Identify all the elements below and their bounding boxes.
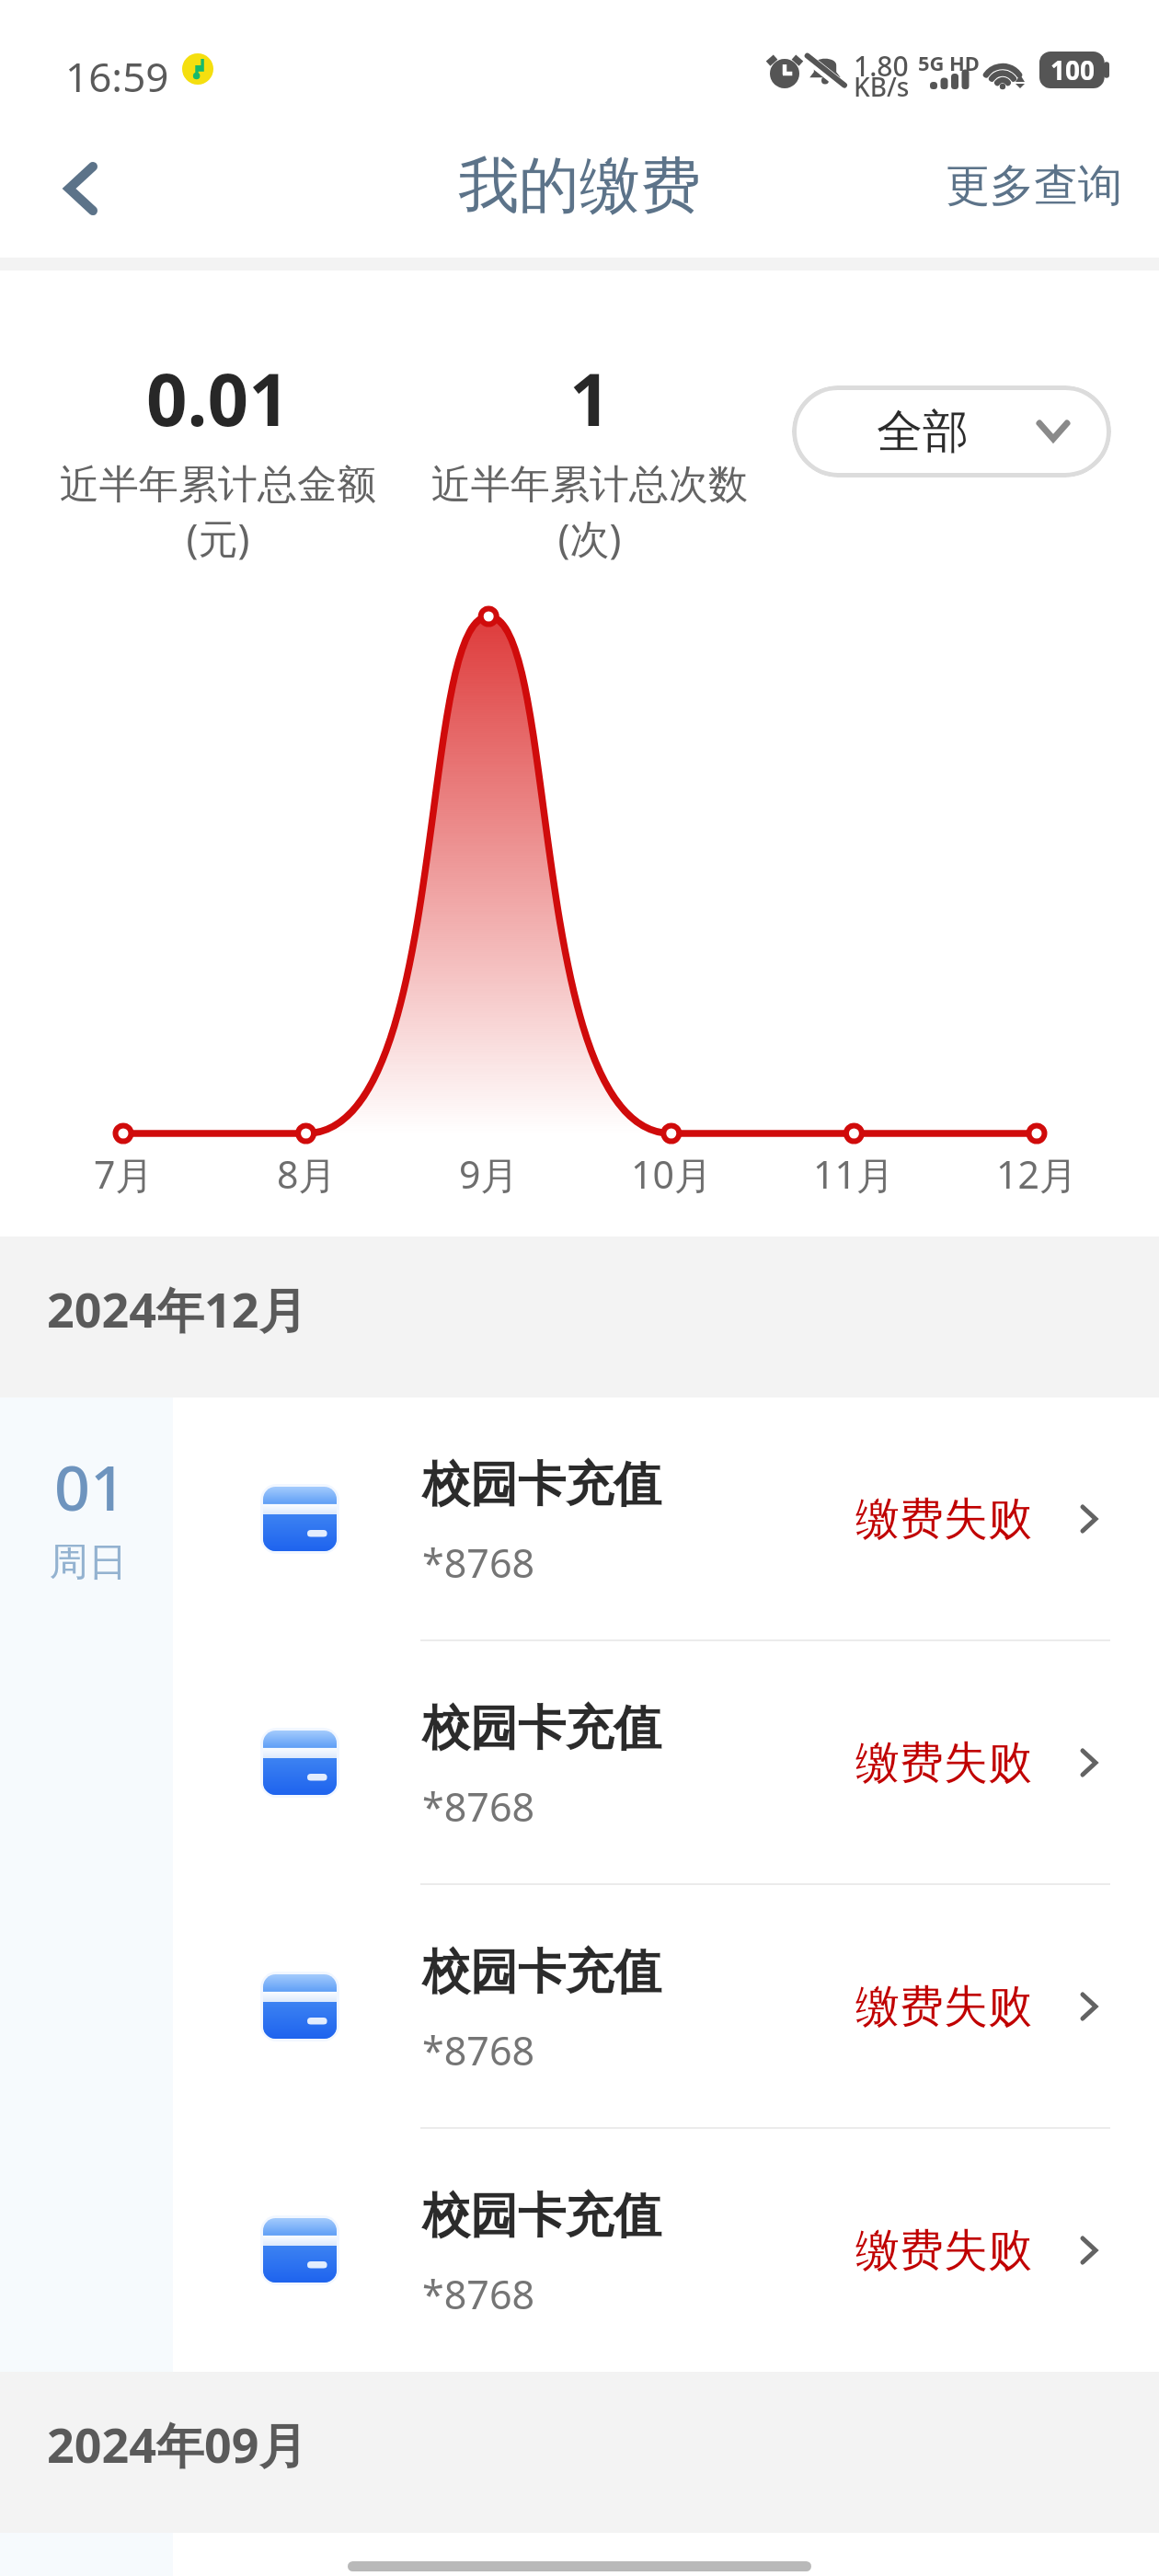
staticText: 0.01 xyxy=(146,350,290,447)
button[interactable]: 校园卡充值 xyxy=(173,1885,1159,2127)
staticText: *8768 xyxy=(422,1779,535,1834)
staticText: 9月 xyxy=(459,1148,519,1200)
staticText: KB/s xyxy=(854,69,910,104)
staticText: 校园卡充值 xyxy=(422,1455,661,1515)
staticText: 11月 xyxy=(813,1148,894,1200)
staticText: *8768 xyxy=(422,1535,535,1590)
staticText: 16:59 xyxy=(65,49,169,104)
staticText: 缴费失败 xyxy=(855,1979,1032,2034)
staticText: 7月 xyxy=(94,1148,154,1200)
staticText: *8768 xyxy=(422,2023,535,2077)
button[interactable]: 全部 xyxy=(792,385,1111,477)
staticText: 缴费失败 xyxy=(855,2223,1032,2278)
staticText: 1.80 xyxy=(854,47,909,85)
button[interactable]: 更多查询 xyxy=(909,134,1159,237)
staticText: 100 xyxy=(1050,52,1096,87)
staticText: 全部 xyxy=(877,403,969,461)
staticText: 缴费失败 xyxy=(855,1735,1032,1790)
staticText: 2024年12月 xyxy=(47,1276,307,1341)
button[interactable]: 校园卡充值 xyxy=(173,2129,1159,2371)
button[interactable]: 校园卡充值 xyxy=(173,1397,1159,1639)
staticText: 我的缴费 xyxy=(458,147,701,224)
staticText: HD xyxy=(949,49,980,76)
staticText: 10月 xyxy=(631,1148,712,1200)
staticText: 校园卡充值 xyxy=(422,1698,661,1759)
staticText: 近半年累计总次数 (次) xyxy=(431,460,748,565)
button[interactable]: 校园卡充值 xyxy=(173,1641,1159,1883)
staticText: 8月 xyxy=(277,1148,337,1200)
button[interactable]: Back xyxy=(26,133,136,244)
staticText: 周日 xyxy=(50,1538,127,1587)
staticText: 01 xyxy=(54,1443,126,1529)
staticText: 校园卡充值 xyxy=(422,2186,661,2247)
staticText: *8768 xyxy=(422,2267,535,2321)
staticText: 更多查询 xyxy=(946,158,1122,213)
staticText: 校园卡充值 xyxy=(422,1942,661,2003)
staticText: 12月 xyxy=(996,1148,1077,1200)
staticText: 近半年累计总金额 (元) xyxy=(60,460,376,565)
staticText: 2024年09月 xyxy=(47,2411,307,2477)
staticText: 5G xyxy=(918,49,945,76)
staticText: 1 xyxy=(569,350,611,447)
staticText: 缴费失败 xyxy=(855,1491,1032,1547)
